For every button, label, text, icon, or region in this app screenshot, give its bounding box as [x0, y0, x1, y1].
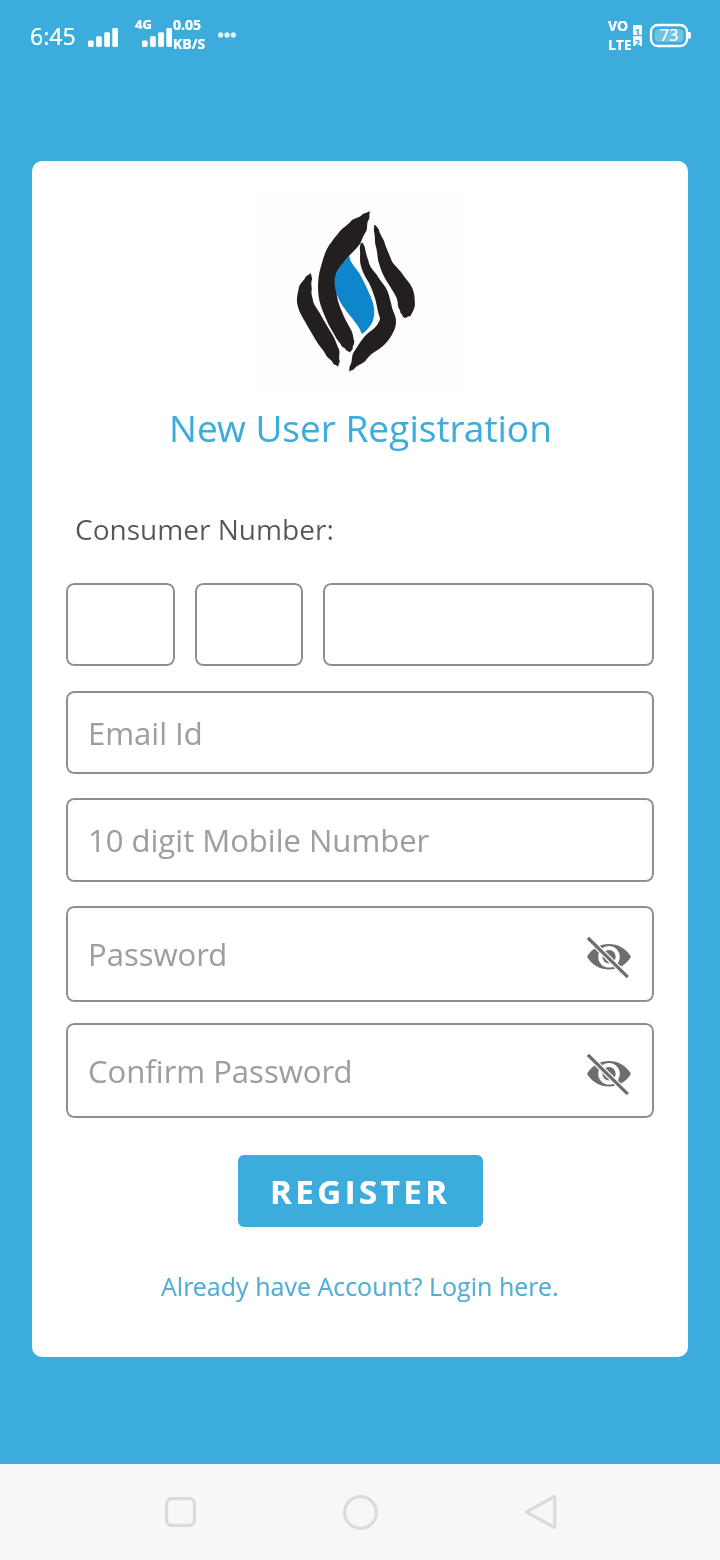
button[interactable]: Already have Account? Login here. — [151, 1263, 569, 1309]
staticText: 10 digit Mobile Number — [88, 819, 430, 861]
button[interactable]: Email Id — [66, 691, 654, 774]
button[interactable] — [66, 583, 175, 666]
button[interactable]: Back — [450, 1464, 630, 1560]
staticText: 6:45 — [30, 20, 76, 51]
staticText: 73 — [660, 24, 679, 46]
staticText: 2 — [635, 36, 641, 46]
button[interactable]: Toggle password visibility — [580, 1042, 638, 1100]
button[interactable] — [323, 583, 654, 666]
button[interactable]: Toggle password visibility — [580, 925, 638, 983]
button[interactable]: Confirm Password — [66, 1023, 654, 1118]
staticText: LTE — [608, 35, 632, 54]
staticText: Already have Account? Login here. — [161, 1269, 559, 1303]
staticText: 0.05 — [173, 15, 201, 34]
button[interactable]: 10 digit Mobile Number — [66, 798, 654, 882]
staticText: Password — [88, 933, 228, 975]
staticText: REGISTER — [270, 1169, 451, 1214]
staticText: 4G — [135, 15, 152, 33]
staticText: KB/S — [173, 34, 206, 53]
staticText: Consumer Number: — [75, 510, 334, 548]
staticText: 1 — [635, 25, 641, 35]
staticText: VO — [608, 16, 629, 35]
button[interactable]: REGISTER — [238, 1155, 483, 1227]
button[interactable] — [195, 583, 303, 666]
staticText: Confirm Password — [88, 1050, 353, 1092]
button[interactable]: Password — [66, 906, 654, 1002]
button[interactable]: Home — [270, 1464, 450, 1560]
staticText: Email Id — [88, 712, 203, 754]
button[interactable]: Recent apps — [90, 1464, 270, 1560]
staticText: New User Registration — [169, 402, 552, 452]
